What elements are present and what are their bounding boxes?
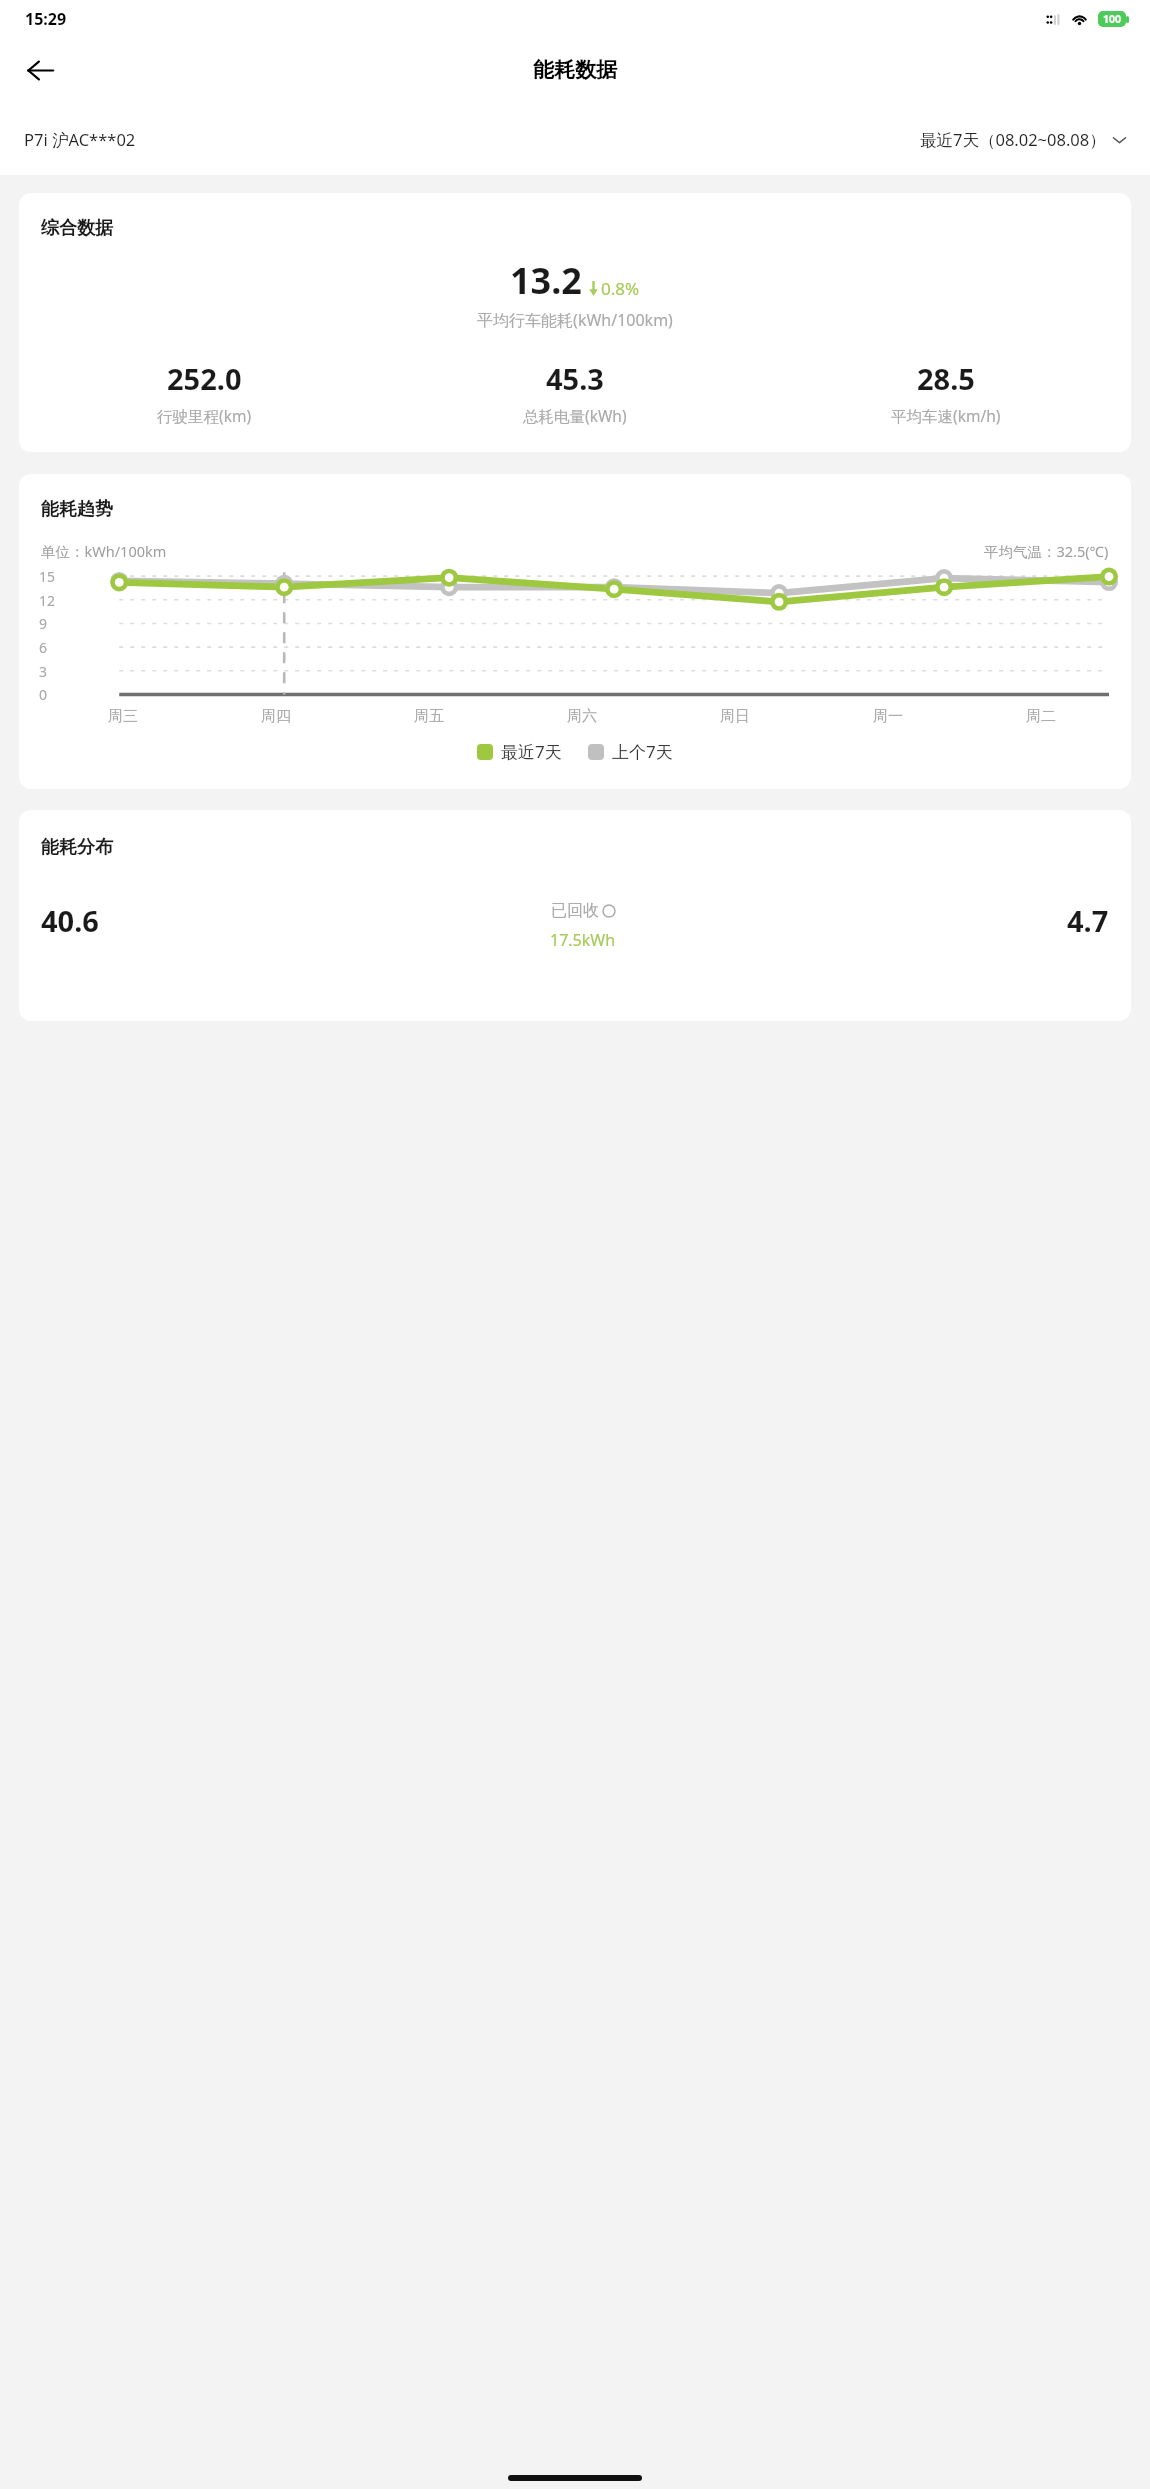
button[interactable]: 能耗趋势	[19, 474, 1131, 789]
staticText: 上个7天	[612, 740, 673, 763]
staticText: P7i 沪AC***02	[24, 128, 136, 151]
staticText: 28.5	[917, 359, 975, 398]
button[interactable]: 28.5	[760, 359, 1131, 426]
staticText: 周六	[567, 707, 597, 726]
staticText: 周一	[873, 707, 903, 726]
staticText: 能耗分布	[41, 836, 113, 859]
button[interactable]: 45.3	[389, 359, 760, 426]
button[interactable]: 最近7天（08.02~08.08）	[920, 128, 1128, 151]
staticText: 周三	[108, 707, 138, 726]
staticText: 17.5kWh	[550, 929, 616, 951]
staticText: 100	[1103, 12, 1122, 26]
staticText: 9	[39, 614, 48, 633]
staticText: 3	[39, 662, 48, 681]
staticText: 综合数据	[41, 217, 113, 240]
staticText: 周四	[261, 707, 291, 726]
staticText: 15:29	[25, 8, 67, 30]
staticText: 行驶里程(km)	[157, 405, 252, 426]
staticText: 周五	[414, 707, 444, 726]
staticText: 能耗趋势	[41, 498, 113, 521]
button[interactable]: 最近7天	[477, 740, 562, 763]
staticText: 周日	[720, 707, 750, 726]
staticText: 40.6	[41, 901, 99, 940]
staticText: 15	[39, 567, 56, 586]
staticText: 最近7天	[501, 740, 562, 763]
staticText: 45.3	[546, 359, 604, 398]
button[interactable]: P7i 沪AC***02	[24, 128, 136, 151]
button[interactable]: 252.0	[19, 359, 389, 426]
staticText: 已回收	[551, 901, 599, 921]
staticText: 0	[39, 685, 48, 704]
staticText: 平均行车能耗(kWh/100km)	[19, 309, 1131, 331]
button[interactable]: Back	[14, 44, 66, 96]
button[interactable]: 能耗分布	[19, 810, 1131, 1021]
staticText: 周二	[1026, 707, 1056, 726]
button[interactable]: 上个7天	[588, 740, 673, 763]
staticText: 平均气温：32.5(℃)	[984, 541, 1109, 561]
staticText: 13.2	[510, 256, 582, 305]
staticText: 4.7	[1067, 901, 1109, 940]
staticText: 能耗数据	[533, 57, 617, 83]
staticText: 252.0	[167, 359, 242, 398]
staticText: 单位：kWh/100km	[41, 541, 167, 561]
staticText: 12	[39, 591, 56, 610]
staticText: 最近7天（08.02~08.08）	[920, 128, 1106, 151]
staticText: 总耗电量(kWh)	[523, 405, 627, 426]
staticText: 0.8%	[601, 277, 640, 300]
staticText: 平均车速(km/h)	[891, 405, 1001, 426]
staticText: 6	[39, 638, 48, 657]
button[interactable]: 综合数据	[19, 193, 1131, 452]
